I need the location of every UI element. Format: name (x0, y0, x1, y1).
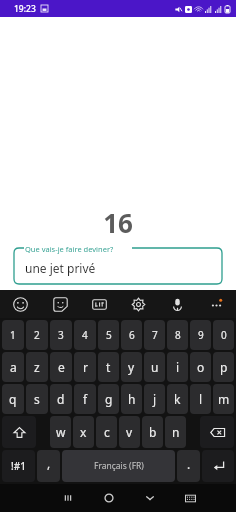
staticText: , (47, 455, 51, 471)
staticText: f (83, 391, 88, 407)
button[interactable]: c (96, 416, 117, 448)
staticText: u (151, 359, 159, 375)
button[interactable]: t (98, 352, 119, 382)
staticText: Que vais-je faire deviner? (25, 244, 114, 254)
button[interactable]: 7 (144, 320, 165, 350)
staticText: t (106, 359, 111, 375)
staticText: h (128, 391, 136, 407)
staticText: 8 (175, 328, 181, 342)
button[interactable]: , (37, 450, 60, 482)
staticText: m (218, 391, 230, 407)
button[interactable]: f (74, 384, 96, 414)
button[interactable]: . (177, 450, 200, 482)
button[interactable]: g (98, 384, 119, 414)
button[interactable]: x (73, 416, 94, 448)
staticText: d (57, 391, 65, 407)
button[interactable]: Stickers (40, 290, 80, 318)
staticText: o (197, 359, 205, 375)
staticText: . (187, 456, 191, 472)
staticText: g (105, 391, 113, 407)
staticText: 2 (34, 328, 40, 342)
button[interactable]: Shift (2, 416, 36, 448)
button[interactable]: Emoji (0, 290, 40, 318)
button[interactable]: 2 (26, 320, 48, 350)
staticText: p (220, 359, 228, 375)
staticText: a (10, 359, 17, 375)
button[interactable]: h (121, 384, 142, 414)
staticText: 5 (106, 328, 112, 342)
button[interactable]: More options (197, 290, 236, 318)
button[interactable]: 1 (2, 320, 24, 350)
button[interactable]: Hide keyboard (129, 484, 170, 512)
button[interactable]: !#1 (2, 450, 35, 482)
staticText: e (58, 359, 65, 375)
button[interactable]: 3 (50, 320, 72, 350)
button[interactable]: v (119, 416, 140, 448)
staticText: 6 (129, 328, 135, 342)
button[interactable]: 4 (74, 320, 96, 350)
staticText: z (34, 359, 40, 375)
button[interactable]: p (213, 352, 234, 382)
staticText: Français (FR) (94, 460, 144, 472)
button[interactable]: l (190, 384, 211, 414)
staticText: v (126, 424, 133, 440)
staticText: l (199, 391, 203, 407)
button[interactable]: Recent apps (47, 484, 88, 512)
staticText: j (153, 391, 157, 407)
button[interactable]: r (74, 352, 96, 382)
staticText: k (174, 391, 181, 407)
button[interactable]: b (142, 416, 163, 448)
button[interactable]: Français (FR) (62, 450, 175, 482)
staticText: !#1 (11, 459, 26, 473)
staticText: 7 (152, 328, 158, 342)
button[interactable]: Que vais-je faire deviner? (14, 248, 222, 284)
button[interactable]: i (167, 352, 188, 382)
button[interactable]: d (50, 384, 72, 414)
button[interactable]: z (26, 352, 48, 382)
button[interactable]: a (2, 352, 24, 382)
button[interactable]: j (144, 384, 165, 414)
button[interactable]: s (26, 384, 48, 414)
staticText: x (80, 424, 87, 440)
button[interactable]: Enter (202, 450, 234, 482)
staticText: 4 (82, 328, 88, 342)
button[interactable]: e (50, 352, 72, 382)
button[interactable]: 0 (213, 320, 234, 350)
button[interactable]: GIF (80, 290, 119, 318)
button[interactable]: Settings (119, 290, 158, 318)
button[interactable]: Backspace (200, 416, 234, 448)
staticText: 3 (58, 328, 64, 342)
staticText: 0 (221, 328, 227, 342)
staticText: c (104, 424, 110, 440)
staticText: 1 (10, 328, 16, 342)
button[interactable]: q (2, 384, 24, 414)
button[interactable]: w (50, 416, 71, 448)
button[interactable]: y (121, 352, 142, 382)
staticText: 19:23 (14, 3, 36, 15)
staticText: y (128, 359, 135, 375)
button[interactable]: Change keyboard (170, 484, 211, 512)
staticText: w (56, 424, 66, 440)
button[interactable]: o (190, 352, 211, 382)
staticText: r (83, 359, 88, 375)
staticText: une jet privé (25, 260, 96, 276)
button[interactable]: Voice input (158, 290, 197, 318)
staticText: n (172, 424, 180, 440)
button[interactable]: 8 (167, 320, 188, 350)
button[interactable]: 5 (98, 320, 119, 350)
button[interactable]: m (213, 384, 234, 414)
button[interactable]: n (165, 416, 186, 448)
staticText: b (149, 424, 157, 440)
button[interactable]: 6 (121, 320, 142, 350)
staticText: 16 (0, 205, 236, 240)
staticText: q (9, 391, 17, 407)
button[interactable]: u (144, 352, 165, 382)
button[interactable]: 9 (190, 320, 211, 350)
staticText: s (34, 391, 40, 407)
staticText: 9 (198, 328, 204, 342)
button[interactable]: Home (88, 484, 129, 512)
button[interactable]: k (167, 384, 188, 414)
staticText: i (176, 359, 180, 375)
